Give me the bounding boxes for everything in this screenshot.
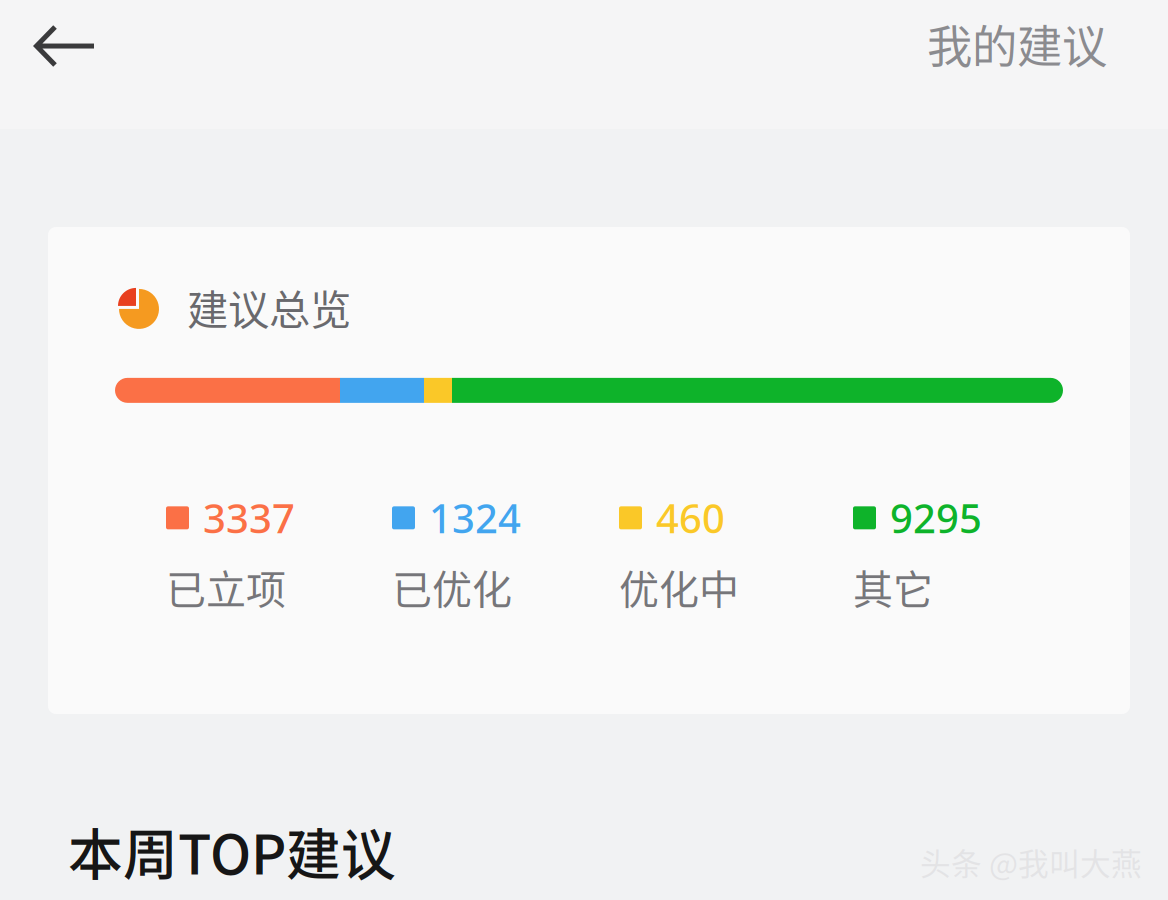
staticText: 已优化 [392,558,512,616]
staticText: 460 [656,491,725,544]
staticText: 我的建议 [927,11,1107,77]
staticText: 建议总览 [187,277,351,337]
staticText: 1324 [429,491,521,544]
staticText: 本周TOP建议 [68,811,396,890]
staticText: 已立项 [166,558,286,616]
button[interactable]: Back [0,0,116,87]
staticText: 3337 [203,491,295,544]
staticText: 头条 @我叫大燕 [920,840,1142,884]
button[interactable]: 9295 [853,501,1079,616]
staticText: 9295 [890,491,982,544]
button[interactable]: 1324 [392,501,619,616]
staticText: 其它 [853,558,933,616]
button[interactable]: 460 [619,501,853,616]
button[interactable]: 3337 [166,501,392,616]
staticText: 优化中 [619,558,739,616]
